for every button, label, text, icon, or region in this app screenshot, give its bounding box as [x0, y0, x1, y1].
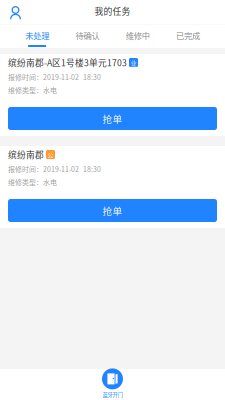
- staticText: 未处理: [25, 29, 49, 41]
- button[interactable]: 蓝牙开门: [92, 368, 132, 399]
- button[interactable]: 抢单: [8, 199, 217, 222]
- button[interactable]: 抢单: [8, 107, 217, 130]
- button[interactable]: 维修中: [112, 24, 163, 48]
- button[interactable]: Profile: [0, 0, 27, 24]
- staticText: 维修类型：水电: [8, 85, 57, 95]
- staticText: 抢单: [102, 203, 122, 217]
- staticText: 待确认: [75, 29, 99, 41]
- button[interactable]: 未处理: [12, 24, 62, 48]
- staticText: 维修中: [126, 29, 150, 41]
- staticText: 抢单: [102, 111, 122, 125]
- staticText: 缤纷南郡-A区1号楼3单元1703: [8, 56, 127, 69]
- staticText: 已完成: [176, 29, 200, 41]
- staticText: 报修时间：2019-11-02 18:30: [8, 72, 101, 82]
- staticText: 公: [47, 150, 53, 159]
- button[interactable]: 待确认: [62, 24, 112, 48]
- staticText: 缤纷南郡: [8, 148, 44, 161]
- staticText: 报修时间：2019-11-02 18:30: [8, 164, 101, 174]
- staticText: 维修类型：水电: [8, 177, 57, 187]
- staticText: 业: [130, 58, 136, 67]
- button[interactable]: 已完成: [163, 24, 213, 48]
- staticText: 我的任务: [94, 5, 130, 17]
- staticText: 蓝牙开门: [102, 391, 122, 399]
